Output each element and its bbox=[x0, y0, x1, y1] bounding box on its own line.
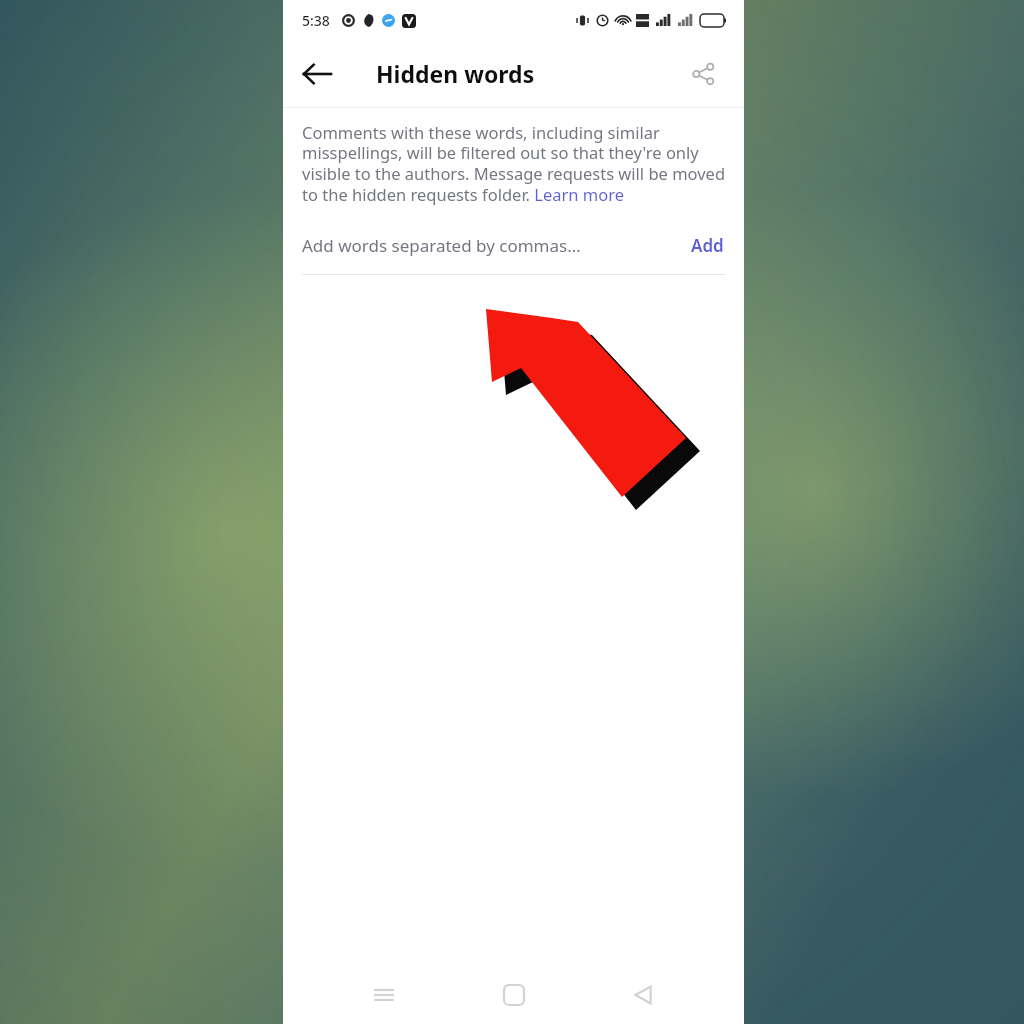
staticText: Add bbox=[691, 234, 724, 257]
staticText: Add words separated by commas… bbox=[302, 234, 659, 257]
button[interactable]: Back bbox=[615, 967, 671, 1023]
staticText: 5:38 bbox=[302, 11, 330, 30]
button[interactable]: Add bbox=[689, 230, 726, 261]
button[interactable]: Home bbox=[486, 967, 542, 1023]
button[interactable]: Comments with these words, including sim… bbox=[302, 121, 726, 206]
button[interactable]: Add words separated by commas… bbox=[302, 230, 726, 261]
button[interactable]: Share bbox=[681, 52, 725, 96]
staticText: Hidden words bbox=[376, 58, 535, 89]
button[interactable]: Recents bbox=[356, 967, 412, 1023]
button[interactable]: Back bbox=[291, 48, 343, 100]
